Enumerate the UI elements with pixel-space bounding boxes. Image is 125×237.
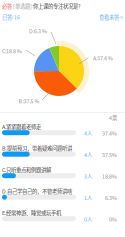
staticText: C:18.8 %: [2, 47, 22, 55]
staticText: 查看未答 >: [99, 13, 123, 21]
button[interactable]: D.自己学自己的，不管老师讲啥: [0, 187, 125, 209]
staticText: [单选题]: [12, 2, 33, 10]
button[interactable]: E.经常神游、睡觉或玩手机: [0, 209, 125, 230]
staticText: 已答: 16: [2, 13, 20, 21]
button[interactable]: C.只听重点和例题讲解: [0, 166, 125, 187]
staticText: D.自己学自己的，不管老师讲啥: [2, 187, 72, 195]
staticText: 必答: [2, 2, 12, 10]
staticText: 18.8%: [102, 172, 117, 180]
staticText: 4人: [84, 151, 92, 158]
staticText: 4票: [109, 114, 117, 121]
staticText: 1人: [84, 194, 92, 201]
staticText: B:37.5 %: [18, 97, 39, 105]
staticText: A:37.4 %: [93, 54, 113, 62]
staticText: 你上课的专注状况是?: [33, 2, 81, 10]
staticText: B.提前预习，带着疑难问题听讲: [2, 144, 72, 152]
button[interactable]: 查看未答 >: [99, 13, 123, 21]
button[interactable]: A.紧紧跟着老师走: [0, 123, 125, 144]
staticText: 0人: [84, 215, 92, 223]
staticText: 6.3%: [105, 194, 117, 201]
staticText: 3人: [84, 172, 92, 180]
staticText: 37.5%: [102, 151, 117, 158]
staticText: C.只听重点和例题讲解: [2, 166, 51, 173]
staticText: 4人: [84, 129, 92, 137]
staticText: D:6.3 %: [29, 27, 47, 35]
staticText: 0%: [109, 215, 117, 223]
button[interactable]: B.提前预习，带着疑难问题听讲: [0, 144, 125, 166]
staticText: 37.4%: [102, 129, 117, 137]
staticText: E.经常神游、睡觉或玩手机: [2, 209, 61, 216]
staticText: A.紧紧跟着老师走: [2, 123, 41, 130]
